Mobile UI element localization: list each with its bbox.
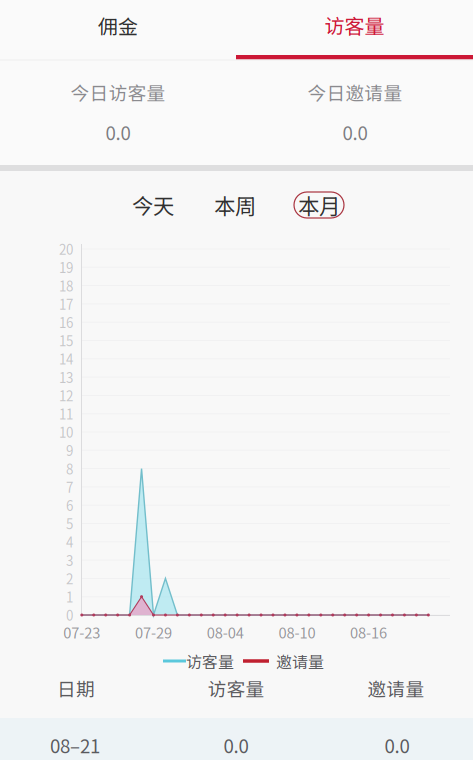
button[interactable]: 本周 xyxy=(208,191,262,219)
staticText: 邀请量 xyxy=(276,649,324,673)
staticText: 佣金 xyxy=(98,11,138,40)
staticText: 0.0 xyxy=(105,118,130,145)
staticText: 8 xyxy=(66,459,73,478)
staticText: 2 xyxy=(66,569,73,588)
staticText: 今日访客量 xyxy=(70,78,165,105)
staticText: 1 xyxy=(66,587,73,606)
staticText: 10 xyxy=(59,422,73,442)
staticText: 08–21 xyxy=(50,731,100,758)
staticText: 9 xyxy=(66,441,73,460)
staticText: 7 xyxy=(66,477,73,496)
staticText: 20 xyxy=(59,239,73,259)
staticText: 07-23 xyxy=(63,621,100,643)
staticText: 18 xyxy=(59,276,73,295)
staticText: 0.0 xyxy=(223,731,248,758)
staticText: 邀请量 xyxy=(367,674,424,701)
staticText: 13 xyxy=(59,367,73,387)
staticText: 19 xyxy=(59,258,73,277)
staticText: 6 xyxy=(66,495,73,515)
staticText: 17 xyxy=(59,294,73,313)
staticText: 08-16 xyxy=(350,621,387,643)
staticText: 今天 xyxy=(132,190,174,220)
staticText: 14 xyxy=(59,349,73,368)
staticText: 08-10 xyxy=(278,621,315,643)
staticText: 访客量 xyxy=(324,10,384,39)
staticText: 15 xyxy=(59,331,73,350)
staticText: 0.0 xyxy=(342,118,367,145)
staticText: 本周 xyxy=(214,190,256,220)
staticText: 11 xyxy=(59,404,73,423)
button[interactable]: 佣金 xyxy=(0,0,236,59)
button[interactable]: 访客量 xyxy=(236,0,473,59)
staticText: 3 xyxy=(66,550,73,570)
button[interactable]: 今天 xyxy=(126,191,180,219)
staticText: 日期 xyxy=(57,674,95,701)
staticText: 16 xyxy=(59,312,73,332)
staticText: 访客量 xyxy=(207,674,264,701)
staticText: 0 xyxy=(66,605,73,625)
staticText: 本月 xyxy=(298,190,340,220)
button[interactable]: 本月 xyxy=(294,192,344,218)
staticText: 4 xyxy=(66,532,73,551)
staticText: 今日邀请量 xyxy=(307,78,402,105)
staticText: 08-04 xyxy=(207,621,244,643)
staticText: 访客量 xyxy=(186,649,234,673)
staticText: 5 xyxy=(66,514,73,533)
staticText: 0.0 xyxy=(384,731,409,758)
staticText: 12 xyxy=(59,386,73,405)
staticText: 07-29 xyxy=(135,621,172,643)
